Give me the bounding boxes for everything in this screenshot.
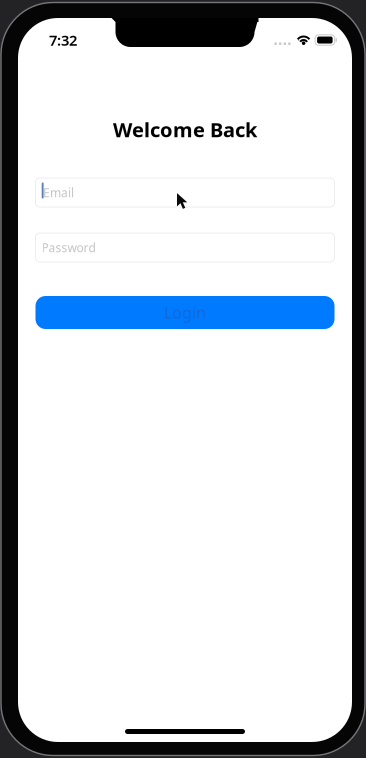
staticText: Login xyxy=(164,302,206,323)
staticText: Password xyxy=(41,239,95,255)
button[interactable]: Password xyxy=(35,233,334,262)
staticText: Welcome Back xyxy=(113,116,257,143)
button[interactable]: Email xyxy=(35,178,334,207)
staticText: 7:32 xyxy=(49,30,77,50)
button[interactable]: Login xyxy=(35,296,334,329)
staticText: Email xyxy=(43,184,74,200)
